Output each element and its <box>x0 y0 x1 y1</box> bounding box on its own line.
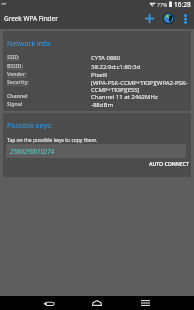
button[interactable]: Back <box>36 296 61 310</box>
staticText: BSSID: <box>7 63 23 70</box>
button[interactable]: Add network <box>139 8 159 29</box>
staticText: 16:28 <box>174 0 191 8</box>
staticText: Possible keys: <box>7 121 53 131</box>
staticText: Security: <box>7 79 29 86</box>
staticText: -88dBm <box>91 101 113 109</box>
button[interactable]: More options <box>177 8 193 29</box>
button[interactable]: Recent apps <box>133 296 157 310</box>
staticText: Greek WPA Finder <box>4 14 58 23</box>
staticText: AUTO CONNECT <box>149 160 189 167</box>
staticText: SSID: <box>7 54 20 61</box>
staticText: 77% <box>157 1 168 8</box>
staticText: Channel 11 at 2462MHz <box>91 93 158 101</box>
staticText: 25802Y0010274 <box>10 147 55 155</box>
button[interactable]: Home <box>85 296 109 310</box>
staticText: Network info: <box>7 39 52 49</box>
staticText: Tap on the possible keys to copy them. <box>7 137 98 144</box>
staticText: Signal <box>7 101 23 108</box>
staticText: [WPA-PSK-CCMP+TKIP][WPA2-PSK- CCMP+TKIP]… <box>91 79 188 94</box>
staticText: Channel <box>7 93 28 100</box>
button[interactable]: AUTO CONNECT <box>144 158 191 169</box>
staticText: 38:22:9d:c1:80:3d <box>91 63 141 71</box>
button[interactable]: 25802Y0010274 <box>6 144 186 158</box>
staticText: Pixelli <box>91 71 108 79</box>
button[interactable]: Open browser <box>159 8 177 29</box>
staticText: CYTA 0880 <box>91 54 121 62</box>
staticText: Vendor: <box>7 71 27 78</box>
